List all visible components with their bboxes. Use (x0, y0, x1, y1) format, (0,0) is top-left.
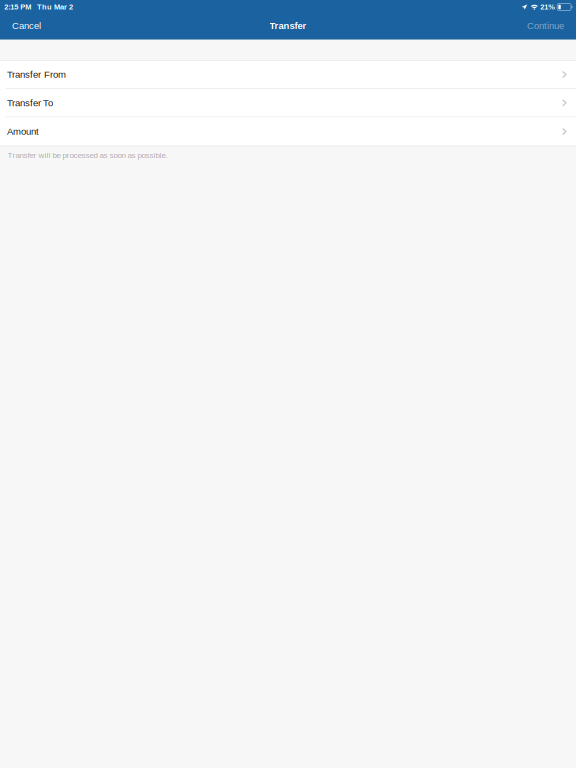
staticText: 21% (540, 3, 555, 11)
button[interactable]: Cancel (6, 15, 47, 36)
staticText: Transfer (269, 20, 306, 31)
button[interactable]: Amount (0, 117, 576, 146)
staticText: Amount (7, 126, 39, 137)
staticText: Thu Mar 2 (37, 3, 73, 11)
staticText: Continue (527, 20, 564, 31)
staticText: Transfer will be processed as soon as po… (7, 151, 167, 160)
button[interactable]: Transfer To (0, 89, 576, 117)
staticText: Transfer To (7, 97, 53, 108)
button[interactable]: Transfer From (0, 61, 576, 89)
button[interactable]: Continue (521, 15, 570, 36)
staticText: 2:15 PM (4, 3, 31, 11)
staticText: Transfer From (7, 69, 66, 80)
staticText: Cancel (12, 20, 41, 31)
